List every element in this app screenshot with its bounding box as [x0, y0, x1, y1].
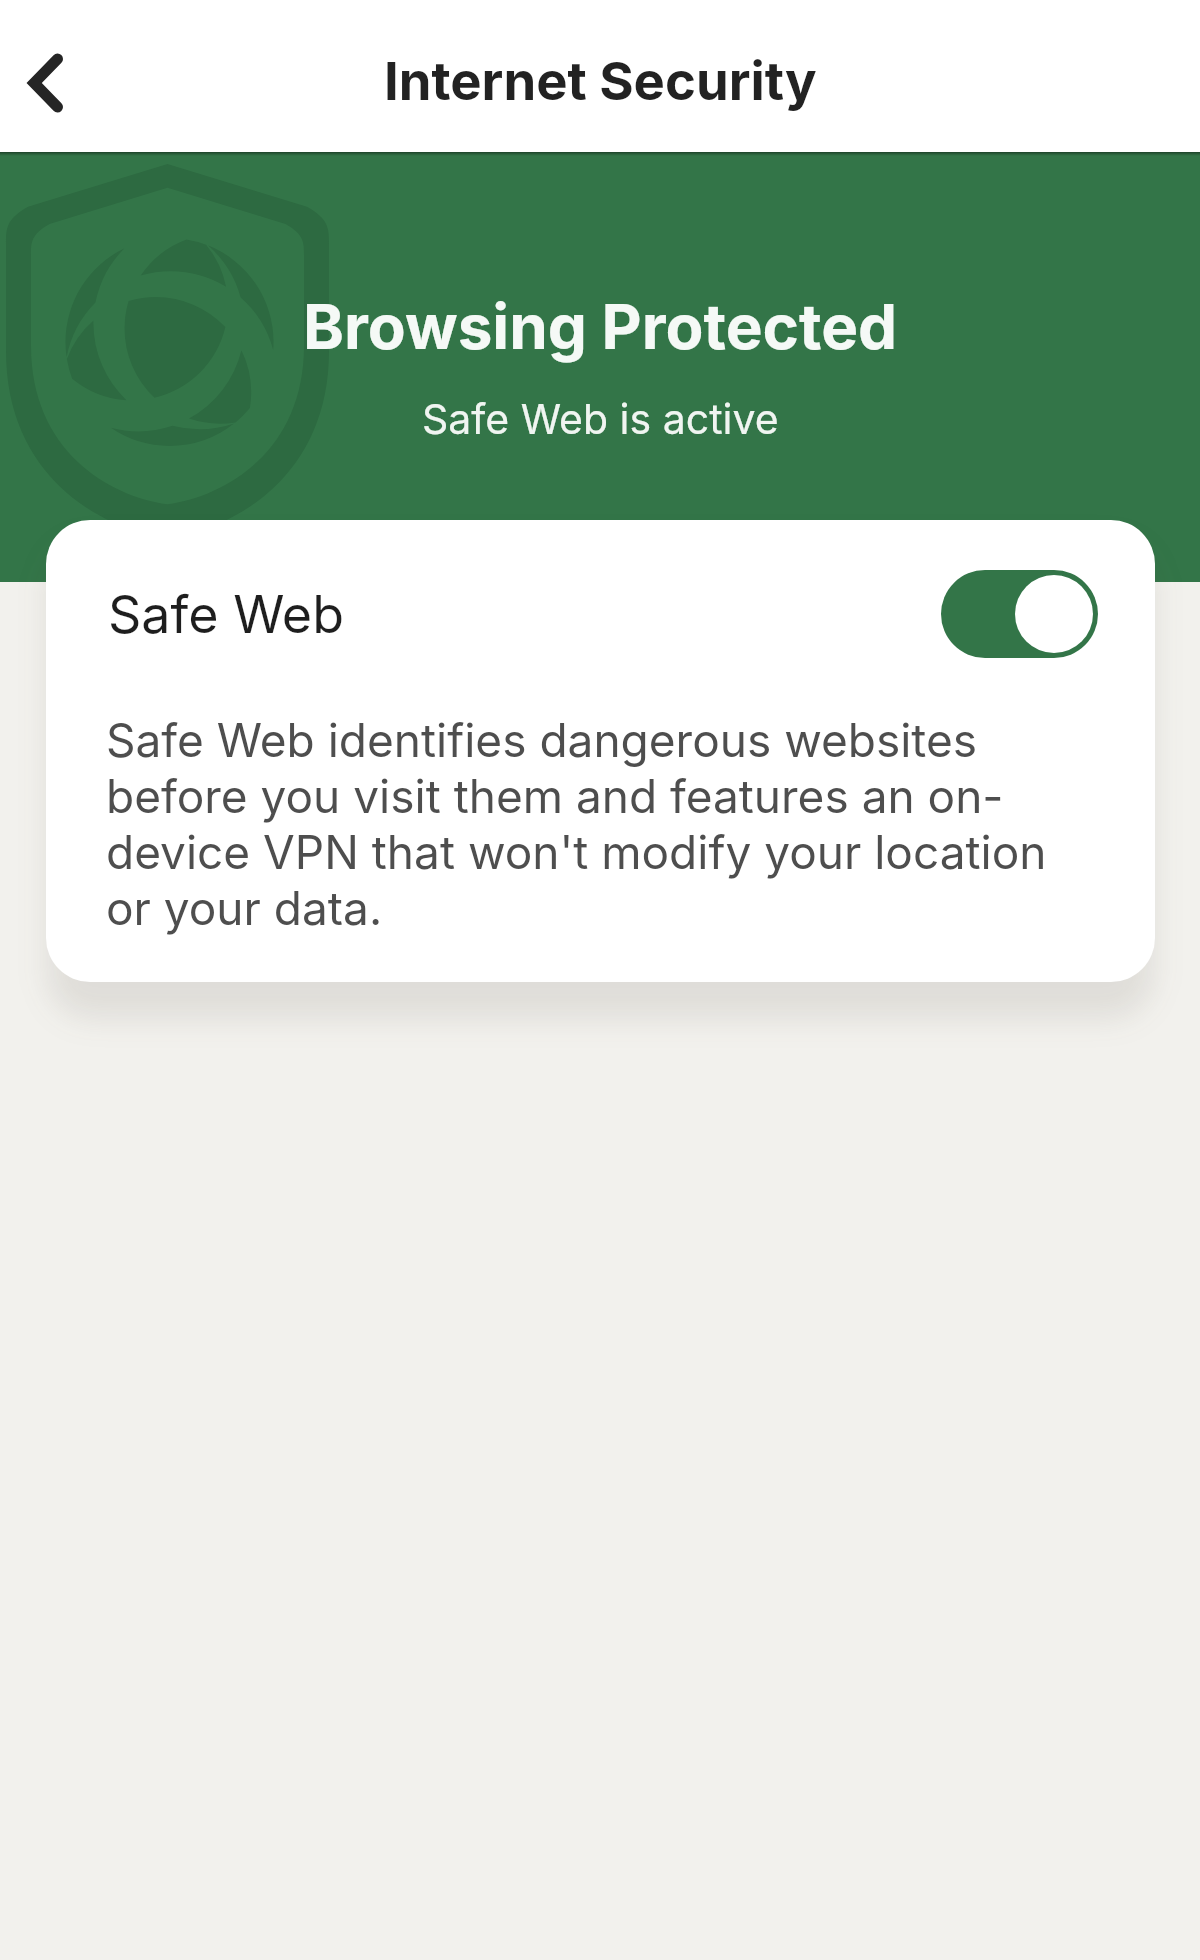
staticText: Safe Web identifies dangerous websites b…	[106, 712, 1066, 936]
button[interactable]: Safe Web	[108, 564, 1098, 664]
staticText: Internet Security	[384, 49, 817, 113]
staticText: Safe Web is active	[422, 394, 779, 444]
staticText: Browsing Protected	[303, 289, 898, 364]
button[interactable]: Back	[0, 35, 96, 131]
button[interactable]: Safe Web on	[941, 570, 1098, 658]
staticText: Safe Web	[108, 583, 344, 646]
